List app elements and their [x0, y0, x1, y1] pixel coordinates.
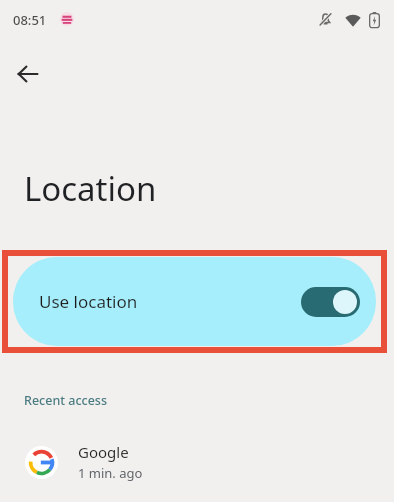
staticText: 1 min. ago — [78, 464, 143, 482]
staticText: Google — [78, 442, 129, 462]
staticText: Use location — [39, 290, 138, 313]
button[interactable]: Use location — [13, 257, 376, 346]
staticText: Location — [24, 166, 157, 211]
button[interactable]: Use location toggle, on — [301, 287, 360, 317]
button[interactable]: Google — [0, 432, 394, 492]
staticText: 08:51 — [13, 11, 47, 29]
button[interactable]: Back — [8, 54, 48, 94]
staticText: Recent access — [24, 392, 108, 409]
